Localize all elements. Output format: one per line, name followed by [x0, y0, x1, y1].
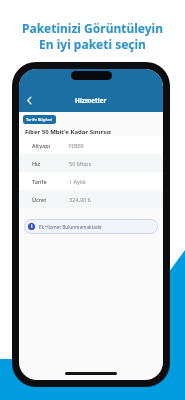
staticText: Ek Hizmet Bulunmamaktadır: [39, 224, 102, 230]
staticText: 1 Aylık: [69, 178, 86, 185]
button[interactable]: Tarife: [19, 172, 163, 190]
staticText: En iyi paketi seçin: [39, 36, 146, 52]
staticText: Hizmetler: [75, 96, 107, 105]
button[interactable]: i: [24, 219, 158, 234]
staticText: Altyapı: [32, 142, 69, 149]
staticText: 50 Mbps: [69, 160, 92, 167]
button[interactable]: Ücret: [19, 190, 163, 208]
staticText: FIBER: [69, 142, 84, 149]
staticText: i: [31, 223, 33, 230]
staticText: Hız: [32, 160, 69, 167]
button[interactable]: Hız: [19, 154, 163, 172]
button[interactable]: Back: [23, 94, 36, 107]
staticText: 324,90 ₺: [69, 196, 91, 203]
staticText: Ücret: [32, 196, 69, 203]
staticText: Paketinizi Görüntüleyin: [22, 20, 163, 36]
button[interactable]: Altyapı: [19, 136, 163, 154]
button[interactable]: Tarife Bilgileri: [23, 115, 56, 124]
staticText: Fiber 50 Mbit'e Kadar Sınırsız: [25, 128, 111, 136]
staticText: Tarife: [32, 178, 69, 185]
staticText: Tarife Bilgileri: [26, 117, 53, 122]
